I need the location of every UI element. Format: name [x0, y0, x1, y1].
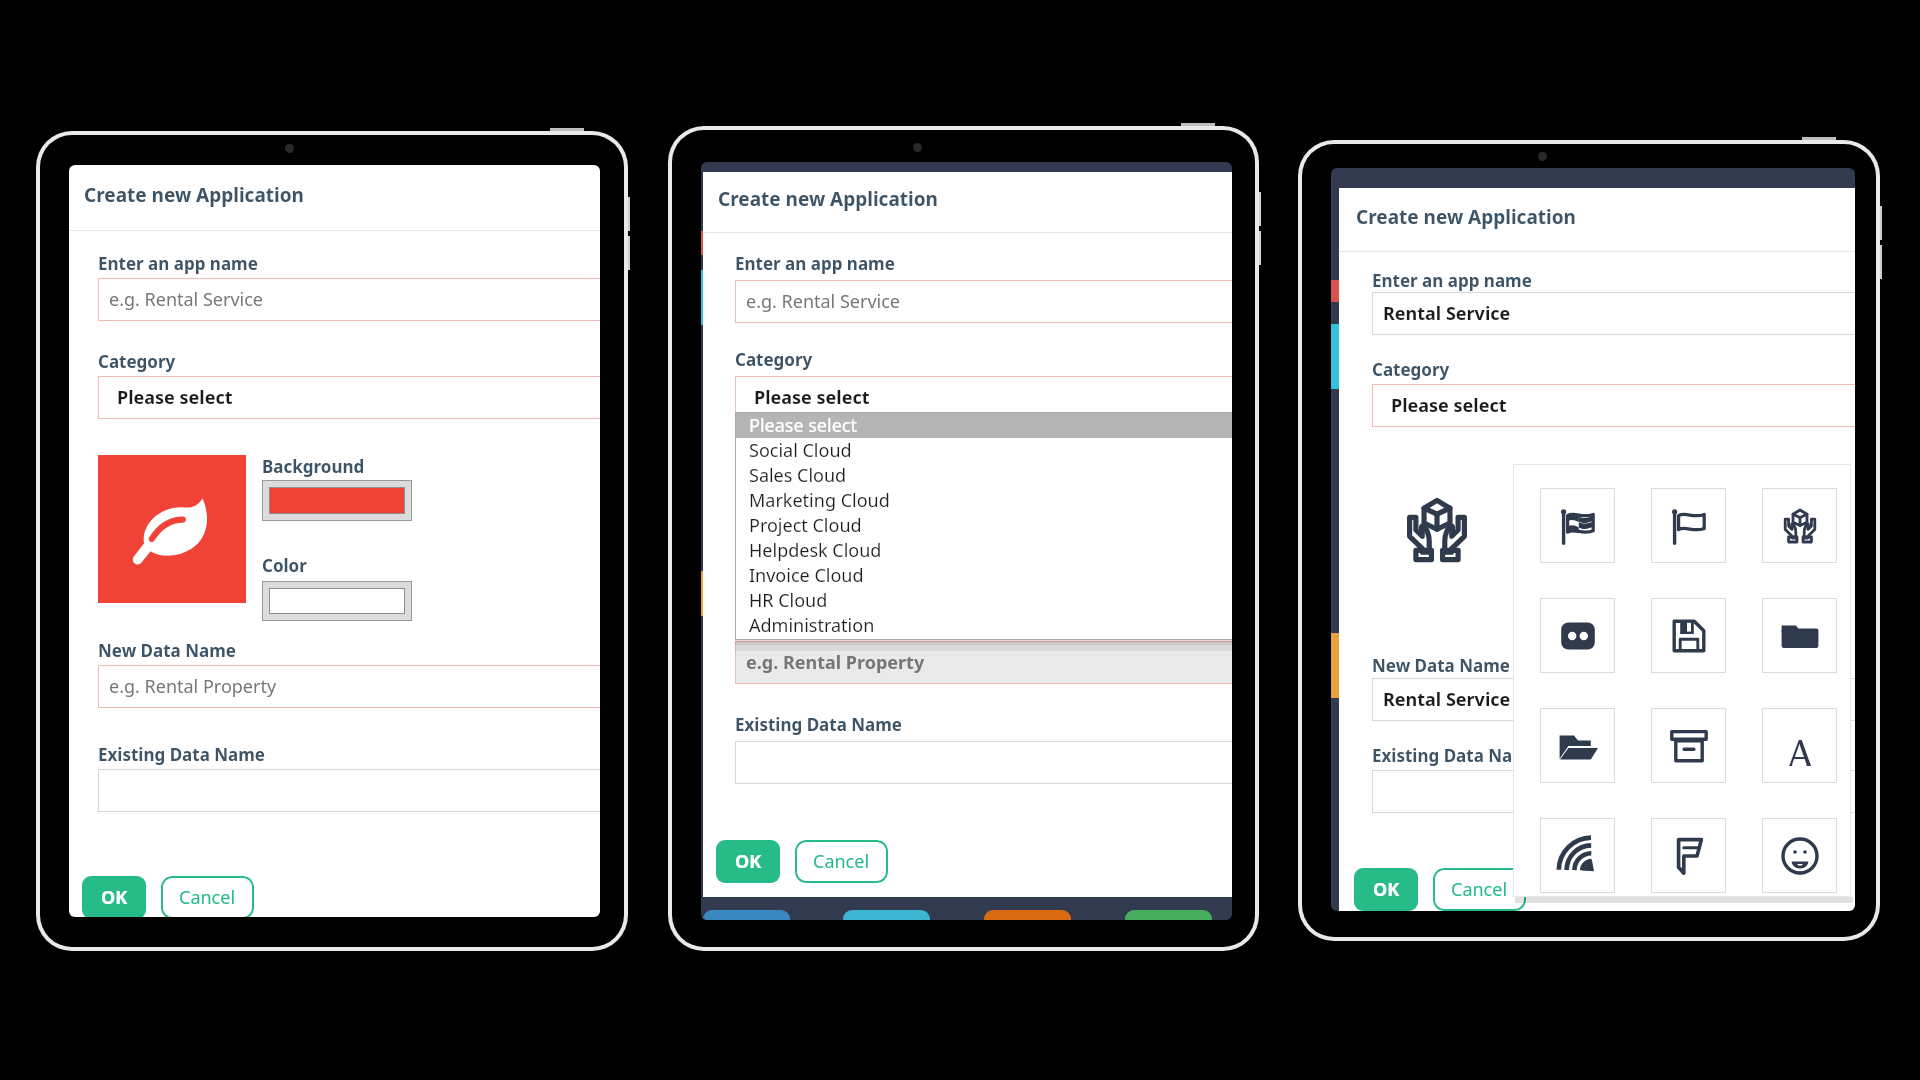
staticText: e.g. Rental Service [746, 289, 900, 314]
button[interactable]: Flag [1651, 488, 1726, 563]
staticText: Enter an app name [735, 252, 895, 275]
button[interactable]: e.g. Rental Service [735, 280, 1232, 323]
staticText: Enter an app name [1372, 269, 1532, 292]
button[interactable]: Save [1651, 598, 1726, 673]
staticText: Cancel [1451, 877, 1508, 902]
button[interactable]: Invoice Cloud [735, 563, 1232, 588]
staticText: New Data Name [1372, 654, 1510, 677]
button[interactable]: Checkered flag [1540, 488, 1615, 563]
button[interactable]: Sales Cloud [735, 463, 1232, 488]
button[interactable]: HR Cloud [735, 588, 1232, 613]
button[interactable] [262, 480, 412, 521]
button[interactable]: Please select [735, 376, 1232, 419]
button[interactable]: OK [82, 876, 146, 917]
staticText: Background [262, 455, 365, 478]
button[interactable]: e.g. Rental Property [735, 641, 1232, 684]
staticText: Category [735, 348, 813, 371]
button[interactable]: Folder [1762, 598, 1837, 673]
staticText: Category [98, 350, 176, 373]
staticText: Existing Data Name [1372, 744, 1539, 767]
button[interactable]: OK [716, 840, 780, 883]
staticText: OK [735, 849, 762, 874]
staticText: Please select [754, 385, 870, 410]
staticText: Please select [117, 385, 233, 410]
button[interactable]: Please select [98, 376, 600, 419]
staticText: OK [1373, 877, 1400, 902]
staticText: Existing Data Name [98, 743, 265, 766]
button[interactable]: Open folder [1540, 708, 1615, 783]
button[interactable]: Cancel [161, 876, 254, 917]
staticText: Color [262, 554, 307, 577]
staticText: Cancel [179, 885, 236, 910]
button[interactable] [262, 581, 412, 621]
button[interactable]: Helpdesk Cloud [735, 538, 1232, 563]
button[interactable] [98, 769, 600, 812]
button[interactable] [1372, 770, 1855, 813]
staticText: Please select [1391, 393, 1507, 418]
staticText: Rental Service [1383, 687, 1511, 712]
button[interactable]: Rental Service [1372, 678, 1855, 721]
staticText: Create new Application [718, 186, 938, 212]
staticText: OK [101, 885, 128, 910]
button[interactable]: Marketing Cloud [735, 488, 1232, 513]
staticText: A [1786, 726, 1815, 766]
staticText: Social Cloud [749, 438, 852, 463]
staticText: e.g. Rental Property [746, 650, 925, 675]
staticText: Project Cloud [749, 513, 862, 538]
button[interactable]: Package care [1762, 488, 1837, 563]
button[interactable]: Letter A [1762, 708, 1837, 783]
button[interactable]: Cancel [795, 840, 888, 883]
staticText: Create new Application [84, 182, 304, 208]
button[interactable]: Flickr [1540, 598, 1615, 673]
staticText: Administration [749, 613, 875, 638]
button[interactable]: Social Cloud [735, 438, 1232, 463]
button[interactable]: e.g. Rental Service [98, 278, 600, 321]
staticText: Invoice Cloud [749, 563, 864, 588]
staticText: Enter an app name [98, 252, 258, 275]
staticText: Create new Application [1356, 204, 1576, 230]
staticText: Category [1372, 358, 1450, 381]
button[interactable] [735, 741, 1232, 784]
staticText: Sales Cloud [749, 463, 847, 488]
button[interactable]: OK [1354, 868, 1418, 911]
staticText: Cancel [813, 849, 870, 874]
button[interactable]: Signal [1540, 818, 1615, 893]
staticText: HR Cloud [749, 588, 828, 613]
button[interactable]: Foursquare [1651, 818, 1726, 893]
button[interactable]: Cancel [1433, 868, 1526, 911]
staticText: Marketing Cloud [749, 488, 890, 513]
staticText: Existing Data Name [735, 713, 902, 736]
staticText: Rental Service [1383, 301, 1511, 326]
button[interactable]: Please select [735, 412, 1232, 438]
button[interactable]: Please select [1372, 384, 1855, 427]
button[interactable]: e.g. Rental Property [98, 665, 600, 708]
button[interactable]: Smiley [1762, 818, 1837, 893]
staticText: Helpdesk Cloud [749, 538, 882, 563]
staticText: e.g. Rental Property [109, 674, 277, 699]
button[interactable]: Administration [735, 613, 1232, 638]
staticText: e.g. Rental Service [109, 287, 263, 312]
button[interactable]: Archive [1651, 708, 1726, 783]
button[interactable]: Project Cloud [735, 513, 1232, 538]
staticText: Please select [749, 413, 857, 438]
button[interactable]: Rental Service [1372, 292, 1855, 335]
staticText: New Data Name [98, 639, 236, 662]
staticText: New Data Name [735, 614, 873, 637]
